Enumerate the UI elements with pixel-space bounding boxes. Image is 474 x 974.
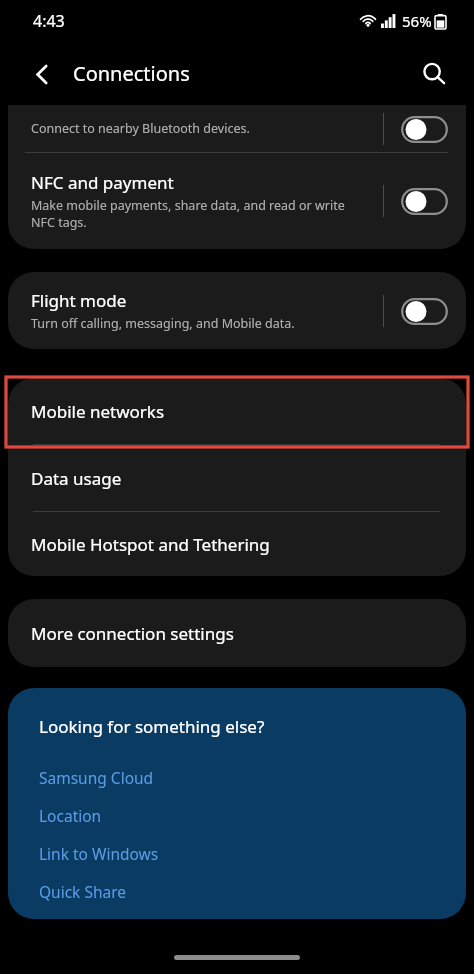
button[interactable]: Toggle switch off: [401, 116, 448, 143]
button[interactable]: More connection settings: [8, 599, 466, 667]
button[interactable]: Flight mode: [8, 272, 466, 349]
staticText: Location: [39, 805, 102, 826]
button[interactable]: Mobile Hotspot and Tethering: [8, 512, 466, 576]
staticText: Connect to nearby Bluetooth devices.: [31, 120, 250, 137]
button[interactable]: Quick Share: [8, 872, 466, 910]
staticText: Turn off calling, messaging, and Mobile …: [31, 315, 295, 332]
button[interactable]: Toggle switch off: [401, 298, 448, 325]
staticText: Flight mode: [31, 289, 127, 312]
button[interactable]: Link to Windows: [8, 834, 466, 872]
staticText: 4:43: [33, 10, 65, 32]
staticText: Samsung Cloud: [39, 767, 154, 788]
button[interactable]: Connect to nearby Bluetooth devices.: [8, 105, 466, 152]
button[interactable]: Search: [412, 52, 456, 96]
button[interactable]: NFC and payment: [8, 153, 466, 249]
staticText: Looking for something else?: [39, 715, 265, 738]
staticText: 56%: [402, 11, 432, 31]
staticText: More connection settings: [31, 622, 234, 645]
staticText: Link to Windows: [39, 843, 159, 864]
button[interactable]: Back: [20, 52, 64, 96]
staticText: Make mobile payments, share data, and re…: [31, 197, 369, 231]
button[interactable]: Toggle switch off: [401, 188, 448, 215]
button[interactable]: Location: [8, 796, 466, 834]
staticText: Connections: [73, 60, 190, 87]
staticText: NFC and payment: [31, 171, 174, 194]
button[interactable]: Mobile networks: [8, 378, 466, 444]
staticText: Mobile networks: [31, 400, 165, 423]
staticText: Mobile Hotspot and Tethering: [31, 533, 270, 556]
button[interactable]: Samsung Cloud: [8, 758, 466, 796]
staticText: Quick Share: [39, 881, 127, 902]
button[interactable]: Data usage: [8, 445, 466, 511]
staticText: Data usage: [31, 467, 122, 490]
